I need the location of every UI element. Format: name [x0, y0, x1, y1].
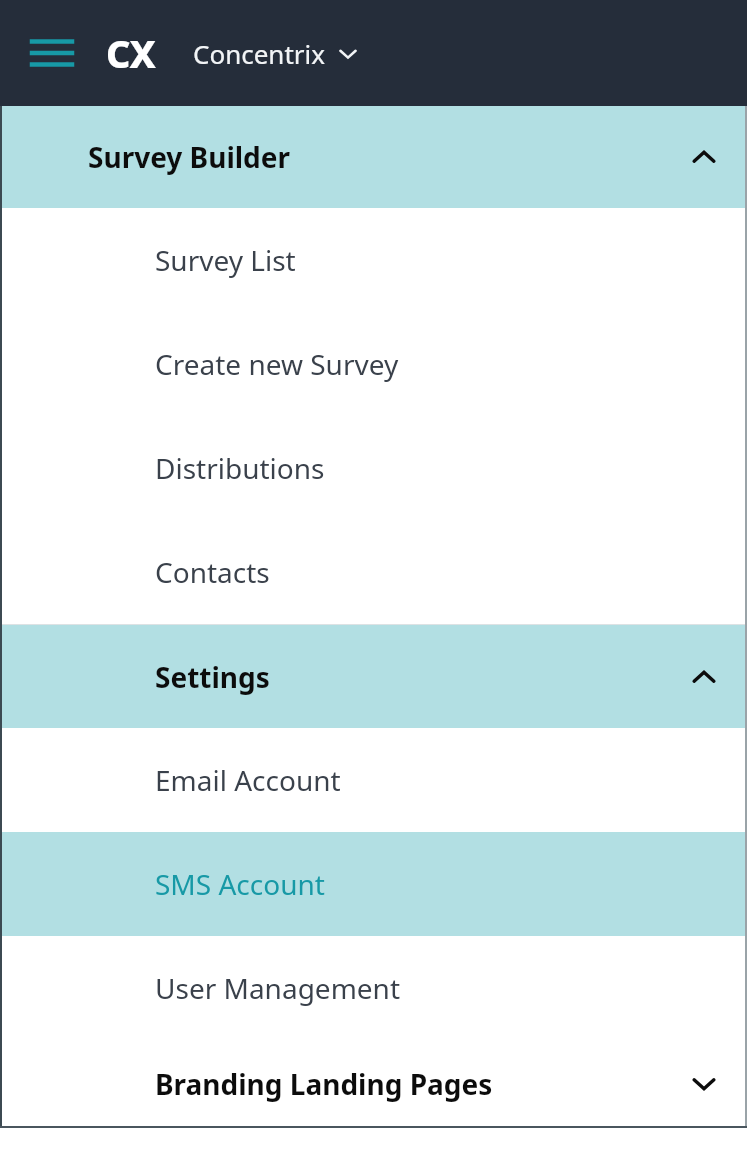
button[interactable]: Survey Builder — [0, 106, 747, 208]
button[interactable]: Open navigation menu — [26, 27, 78, 79]
button[interactable]: Create new Survey — [0, 312, 747, 416]
button[interactable]: Concentrix — [189, 28, 362, 79]
staticText: Create new Survey — [155, 345, 399, 383]
staticText: User Management — [155, 969, 401, 1007]
button[interactable]: Email Account — [0, 728, 747, 832]
button[interactable]: SMS Account — [0, 832, 747, 936]
staticText: CX — [106, 27, 155, 79]
staticText: Email Account — [155, 761, 341, 799]
button[interactable]: Survey List — [0, 208, 747, 312]
button[interactable]: User Management — [0, 936, 747, 1040]
staticText: SMS Account — [155, 865, 325, 903]
staticText: Survey List — [155, 241, 296, 279]
button[interactable]: Contacts — [0, 520, 747, 624]
staticText: Distributions — [155, 449, 325, 487]
staticText: Concentrix — [193, 36, 326, 71]
staticText: Settings — [155, 658, 270, 696]
staticText: Branding Landing Pages — [155, 1065, 493, 1103]
button[interactable]: Distributions — [0, 416, 747, 520]
button[interactable]: Branding Landing Pages — [0, 1040, 747, 1128]
staticText: Contacts — [155, 553, 270, 591]
staticText: Survey Builder — [88, 138, 291, 176]
button[interactable]: Settings — [0, 625, 747, 728]
